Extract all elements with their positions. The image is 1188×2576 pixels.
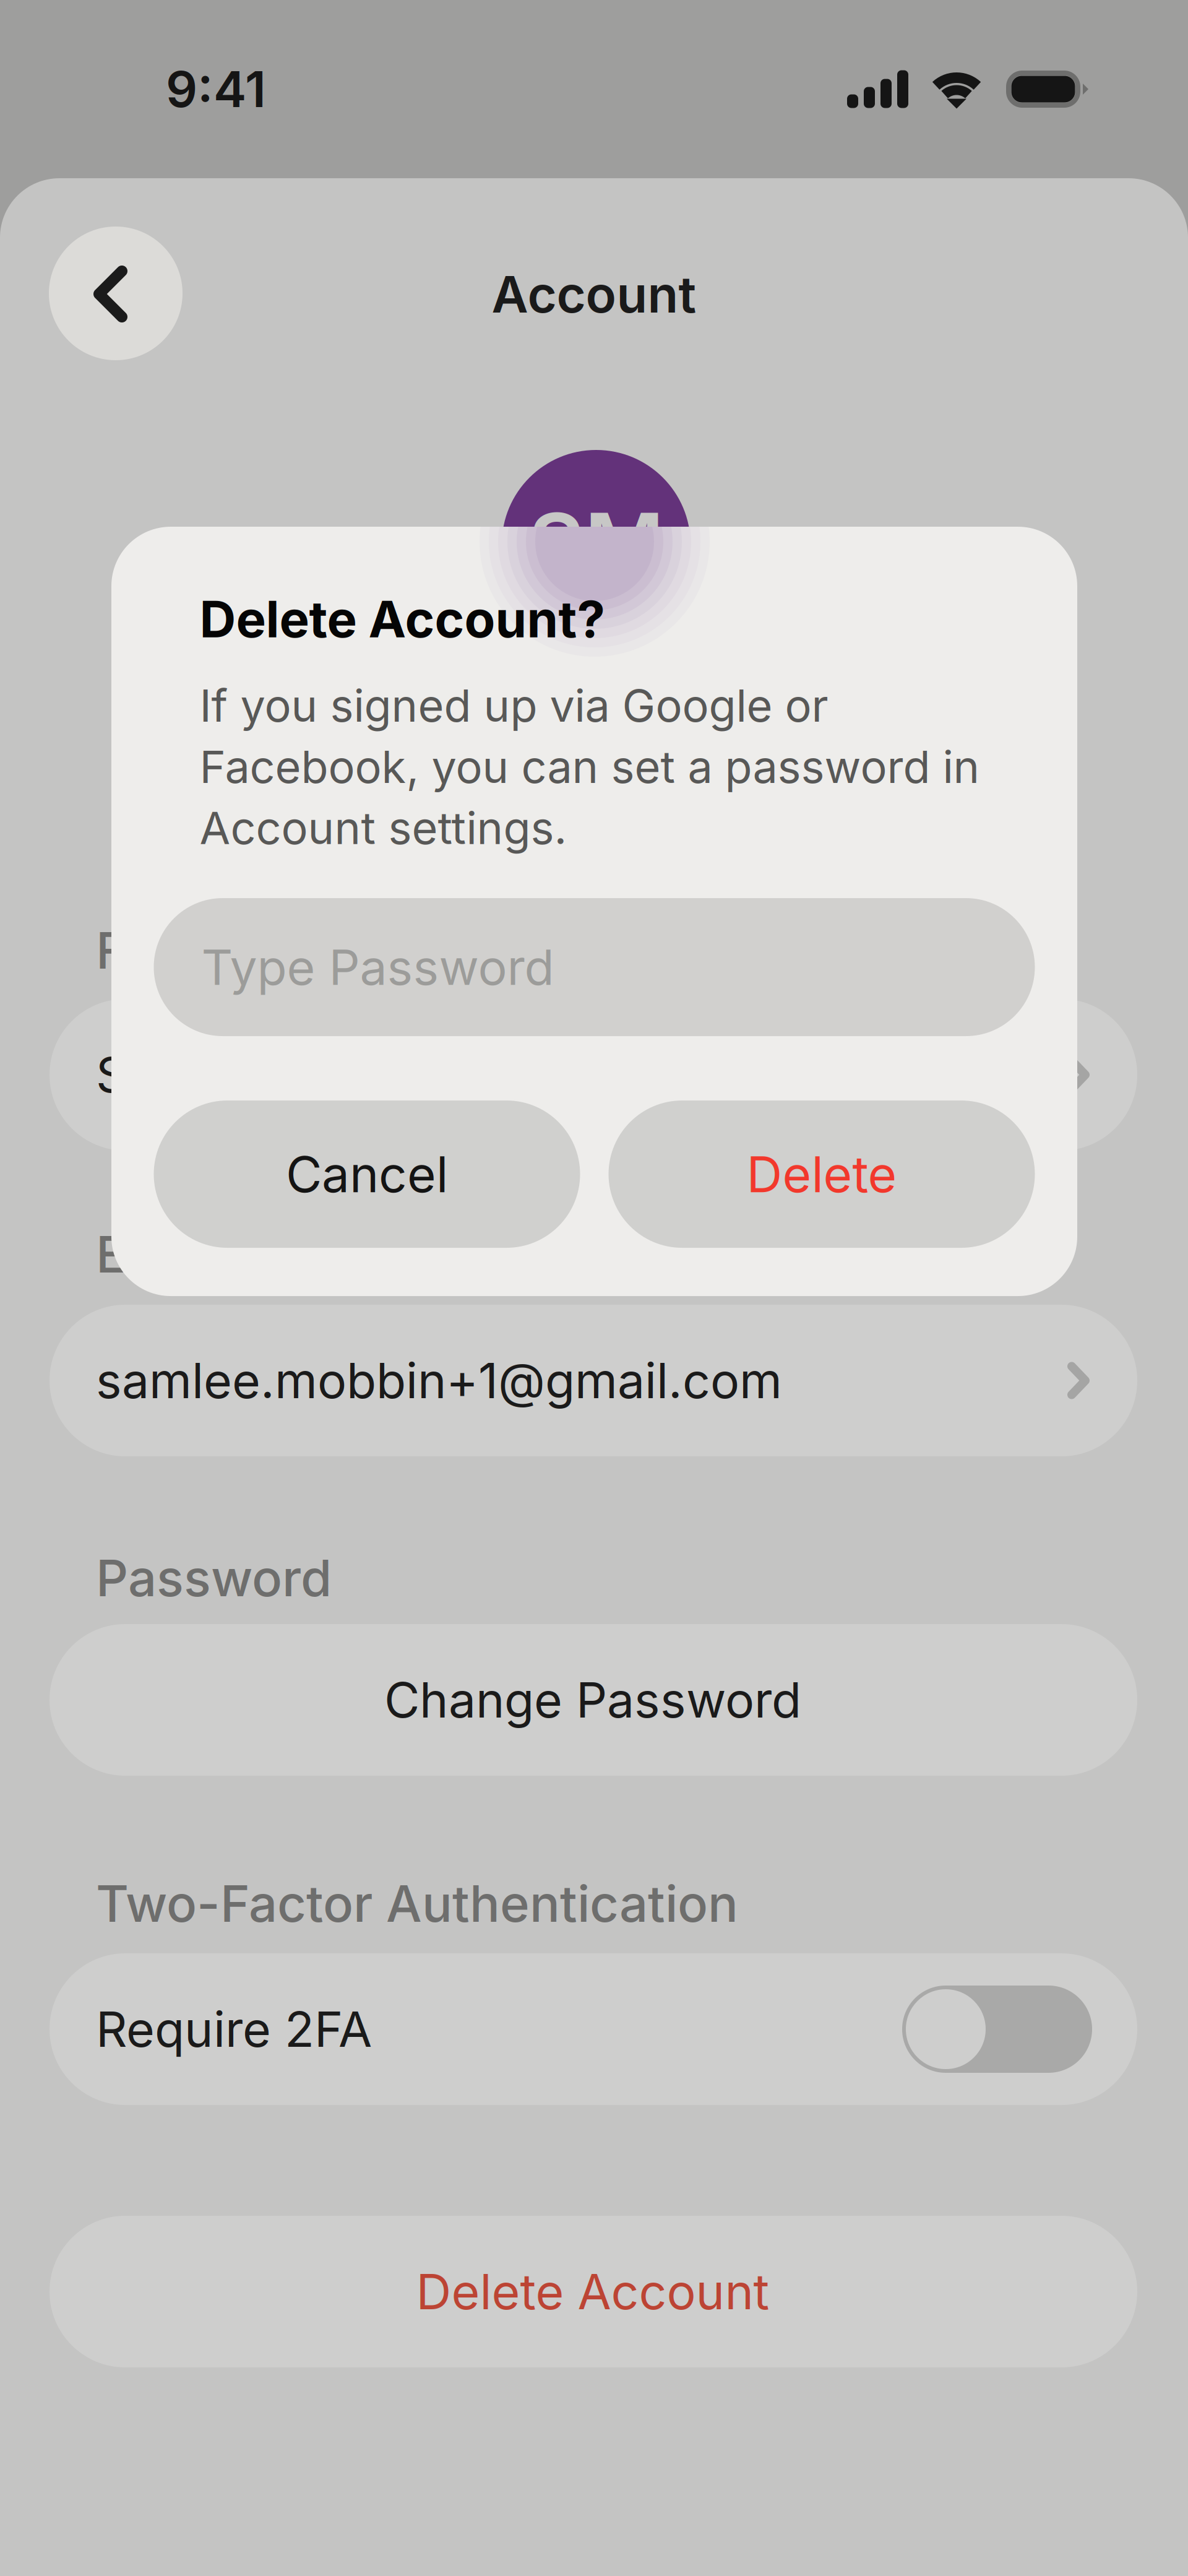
button[interactable]: samlee.mobbin+1@gmail.com [49, 1305, 1137, 1456]
button[interactable]: Change Password [49, 1624, 1137, 1776]
staticText: Password [96, 1548, 332, 1608]
staticText: Cancel [286, 1144, 448, 1204]
staticText: Sam Lee [96, 1045, 295, 1104]
button[interactable]: Cancel [154, 1100, 580, 1248]
staticText: Delete Account [416, 2262, 769, 2321]
staticText: Full Name [96, 920, 334, 981]
staticText: Delete Account? [200, 589, 605, 650]
staticText: Change Password [384, 1670, 801, 1729]
staticText: 9:41 [166, 59, 266, 119]
staticText: Account [492, 264, 696, 325]
staticText: Require 2FA [96, 2000, 372, 2059]
button[interactable]: Back [49, 227, 183, 360]
button[interactable]: Require 2FA [49, 1953, 1137, 2105]
button[interactable]: Delete Account [49, 2216, 1137, 2367]
staticText: Type Password [201, 938, 554, 997]
staticText: If you signed up via Google or Facebook,… [200, 675, 980, 858]
button[interactable]: Sam Lee [49, 999, 1137, 1151]
staticText: Two-Factor Authentication [96, 1873, 738, 1934]
staticText: Delete [747, 1144, 897, 1204]
staticText: SM [528, 492, 664, 597]
staticText: samlee.mobbin+1@gmail.com [96, 1351, 782, 1410]
staticText: Email [96, 1224, 224, 1285]
button[interactable]: Delete [609, 1100, 1035, 1248]
